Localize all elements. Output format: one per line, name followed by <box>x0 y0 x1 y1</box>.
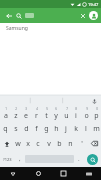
staticText: c <box>36 139 40 149</box>
button[interactable]: h <box>51 121 61 136</box>
button[interactable]: Samsung <box>0 23 101 34</box>
staticText: a <box>4 111 8 121</box>
staticText: ' <box>81 139 83 149</box>
staticText: . <box>78 155 80 163</box>
other: Search <box>16 13 22 19</box>
staticText: w <box>15 139 21 149</box>
staticText: 19:47 <box>88 2 99 7</box>
staticText: 8 <box>75 107 77 111</box>
staticText: m <box>93 124 100 134</box>
button[interactable]: Shift <box>0 136 13 151</box>
button[interactable]: 6 <box>51 106 61 121</box>
button[interactable]: 2 <box>11 106 21 121</box>
staticText: j <box>65 124 67 134</box>
button[interactable]: Recents <box>51 167 76 180</box>
button[interactable]: s <box>11 121 21 136</box>
staticText: 9 <box>86 107 88 111</box>
button[interactable]: ?123 <box>0 151 15 167</box>
button[interactable] <box>25 13 34 18</box>
button[interactable]: c <box>33 136 43 151</box>
staticText: k <box>74 124 78 134</box>
staticText: 3 <box>25 107 27 111</box>
button[interactable]: . <box>74 151 84 167</box>
button[interactable]: Voice input <box>90 97 98 105</box>
button[interactable]: 5 <box>41 106 51 121</box>
button[interactable]: Backspace <box>87 136 101 151</box>
button[interactable]: j <box>61 121 71 136</box>
button[interactable]: Search <box>84 151 101 167</box>
staticText: f <box>35 124 38 134</box>
staticText: 0 <box>96 107 98 111</box>
button[interactable]: g <box>41 121 51 136</box>
button[interactable]: Home <box>26 167 51 180</box>
button[interactable]: Clear <box>78 11 87 20</box>
staticText: p <box>94 111 99 121</box>
staticText: t <box>45 111 48 121</box>
button[interactable]: Switch keyboard <box>76 167 101 180</box>
button[interactable]: 1 <box>0 106 11 121</box>
staticText: v <box>47 139 51 149</box>
button[interactable]: b <box>54 136 65 151</box>
staticText: i <box>75 111 77 121</box>
button[interactable]: n <box>65 136 76 151</box>
button[interactable]: w <box>13 136 23 151</box>
staticText: s <box>14 124 18 134</box>
staticText: l <box>85 124 87 134</box>
button[interactable]: 7 <box>61 106 71 121</box>
staticText: 5 <box>46 107 48 111</box>
staticText: q <box>3 124 8 134</box>
button[interactable]: 9 <box>81 106 91 121</box>
button[interactable]: d <box>21 121 31 136</box>
staticText: r <box>35 111 38 121</box>
button[interactable]: 0 <box>91 106 101 121</box>
button[interactable]: m <box>91 121 101 136</box>
button[interactable]: , <box>15 151 25 167</box>
button[interactable]: ' <box>76 136 87 151</box>
button[interactable]: x <box>23 136 33 151</box>
staticText: n <box>68 139 73 149</box>
staticText: 1 <box>5 107 7 111</box>
button[interactable]: 3 <box>21 106 31 121</box>
staticText: 6 <box>55 107 57 111</box>
button[interactable]: q <box>0 121 11 136</box>
staticText: ?123 <box>3 157 12 162</box>
staticText: Samsung <box>6 25 28 32</box>
button[interactable]: 4 <box>31 106 41 121</box>
staticText: u <box>64 111 69 121</box>
staticText: h <box>54 124 59 134</box>
button[interactable]: f <box>31 121 41 136</box>
staticText: x <box>26 139 30 149</box>
button[interactable]: k <box>71 121 81 136</box>
staticText: b <box>57 139 62 149</box>
staticText: , <box>19 155 21 163</box>
button[interactable]: l <box>81 121 91 136</box>
button[interactable]: Hide keyboard <box>0 167 26 180</box>
button[interactable]: 8 <box>71 106 81 121</box>
staticText: 2 <box>15 107 17 111</box>
button[interactable]: Account <box>89 11 98 20</box>
staticText: e <box>24 111 28 121</box>
staticText: z <box>14 111 18 121</box>
staticText: g <box>44 124 49 134</box>
staticText: o <box>84 111 89 121</box>
button[interactable]: v <box>43 136 54 151</box>
staticText: d <box>24 124 29 134</box>
staticText: 7 <box>66 107 68 111</box>
button[interactable]: Back <box>3 10 14 21</box>
staticText: 4 <box>36 107 38 111</box>
staticText: y <box>54 111 58 121</box>
